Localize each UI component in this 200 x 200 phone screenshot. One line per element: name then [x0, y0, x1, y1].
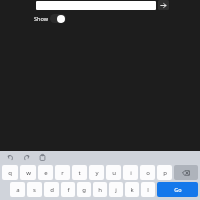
button[interactable]: i	[123, 165, 138, 180]
button[interactable]: j	[109, 182, 123, 197]
staticText: e	[44, 169, 48, 177]
button[interactable]: a	[10, 182, 25, 197]
button[interactable]: u	[106, 165, 121, 180]
button[interactable]: l	[141, 182, 155, 197]
button[interactable]: Redo	[22, 153, 31, 162]
button[interactable]: Undo	[6, 153, 15, 162]
button[interactable]: f	[61, 182, 75, 197]
staticText: j	[115, 186, 117, 194]
staticText: Show	[34, 15, 48, 22]
button[interactable]: r	[55, 165, 70, 180]
staticText: q	[8, 169, 12, 177]
button[interactable]: Send	[158, 0, 169, 10]
staticText: w	[26, 169, 31, 177]
button[interactable]: Show	[34, 12, 66, 24]
button[interactable]: p	[157, 165, 172, 180]
staticText: o	[146, 169, 150, 177]
staticText: p	[163, 169, 167, 177]
button[interactable]: Go	[157, 182, 198, 197]
staticText: t	[78, 169, 81, 177]
button[interactable]: h	[93, 182, 107, 197]
button[interactable]: g	[77, 182, 91, 197]
staticText: l	[147, 186, 149, 194]
staticText: i	[130, 169, 132, 177]
button[interactable]: e	[38, 165, 53, 180]
staticText: u	[112, 169, 116, 177]
button[interactable]: t	[72, 165, 87, 180]
staticText: k	[130, 186, 134, 194]
button[interactable]: y	[89, 165, 104, 180]
staticText: d	[50, 186, 54, 194]
staticText: r	[61, 169, 64, 177]
button[interactable]: d	[44, 182, 59, 197]
staticText: s	[33, 186, 36, 194]
button[interactable]: Backspace	[174, 165, 198, 180]
button[interactable]: o	[140, 165, 155, 180]
staticText: h	[98, 186, 102, 194]
staticText: a	[16, 186, 20, 194]
button[interactable]	[36, 1, 156, 10]
staticText: g	[82, 186, 86, 194]
staticText: Go	[174, 186, 182, 193]
button[interactable]: Paste	[38, 153, 47, 162]
button[interactable]: s	[27, 182, 42, 197]
button[interactable]: q	[2, 165, 18, 180]
button[interactable]: w	[20, 165, 36, 180]
staticText: y	[95, 169, 99, 177]
staticText: f	[67, 186, 70, 194]
button[interactable]: k	[125, 182, 139, 197]
